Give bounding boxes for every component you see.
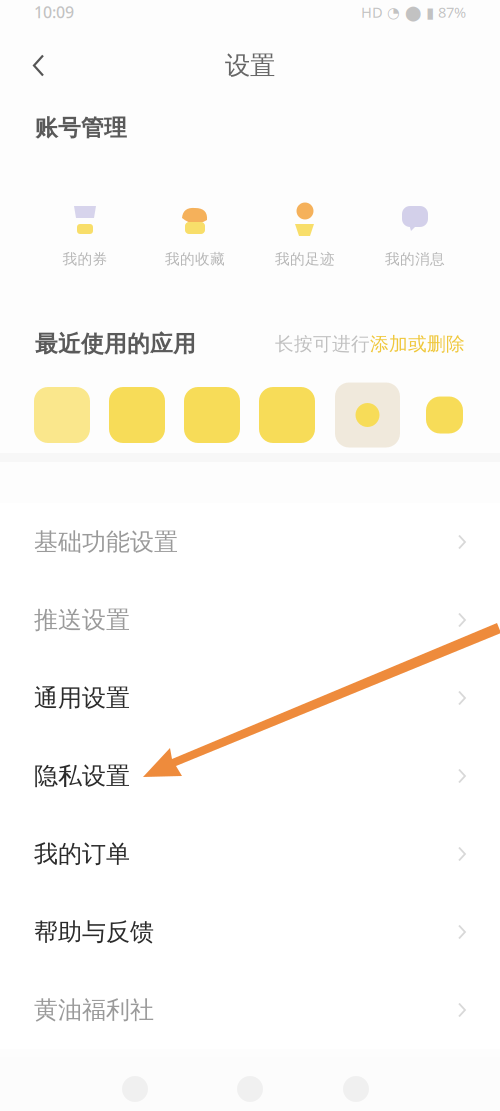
button[interactable]: 发现 bbox=[223, 1057, 277, 1111]
button[interactable]: 推送设置 bbox=[0, 581, 500, 659]
staticText: 我的消息 bbox=[385, 250, 445, 268]
button[interactable]: App bbox=[109, 387, 165, 443]
button[interactable]: 我的 bbox=[329, 1057, 383, 1111]
staticText: 黄油福利社 bbox=[34, 995, 154, 1025]
button[interactable]: 基础功能设置 bbox=[0, 503, 500, 581]
staticText: 最近使用的应用 bbox=[35, 330, 196, 358]
button[interactable]: 隐私设置 bbox=[0, 737, 500, 815]
button[interactable]: App bbox=[259, 387, 315, 443]
button[interactable]: 我的券 bbox=[30, 198, 140, 272]
staticText: 10:09 bbox=[34, 1, 74, 23]
button[interactable]: 通用设置 bbox=[0, 659, 500, 737]
button[interactable]: App bbox=[34, 387, 90, 443]
staticText: 我的足迹 bbox=[275, 250, 335, 268]
staticText: 帮助与反馈 bbox=[34, 917, 154, 947]
staticText: 我的订单 bbox=[34, 839, 130, 869]
staticText: 基础功能设置 bbox=[34, 527, 178, 557]
button[interactable]: 我的足迹 bbox=[250, 198, 360, 272]
staticText: 设置 bbox=[225, 50, 275, 81]
button[interactable]: Back bbox=[0, 36, 77, 94]
button[interactable]: 我的收藏 bbox=[140, 198, 250, 272]
button[interactable]: 帮助与反馈 bbox=[0, 893, 500, 971]
staticText: 账号管理 bbox=[35, 114, 127, 142]
staticText: 通用设置 bbox=[34, 683, 130, 713]
button[interactable]: 首页 bbox=[108, 1057, 162, 1111]
staticText: 长按可进行 bbox=[275, 332, 370, 355]
staticText: 添加或删除 bbox=[370, 332, 465, 355]
button[interactable]: 黄油福利社 bbox=[0, 971, 500, 1049]
staticText: HD ◔ ⬤ ▮ 87% bbox=[361, 2, 466, 22]
button[interactable]: App bbox=[184, 387, 240, 443]
button[interactable]: 我的消息 bbox=[360, 198, 470, 272]
staticText: 隐私设置 bbox=[34, 761, 130, 791]
staticText: 我的收藏 bbox=[165, 250, 225, 268]
button[interactable]: App bbox=[426, 396, 463, 433]
button[interactable]: App bbox=[335, 382, 400, 447]
button[interactable]: 我的订单 bbox=[0, 815, 500, 893]
staticText: 推送设置 bbox=[34, 605, 130, 635]
staticText: 我的券 bbox=[62, 250, 107, 268]
